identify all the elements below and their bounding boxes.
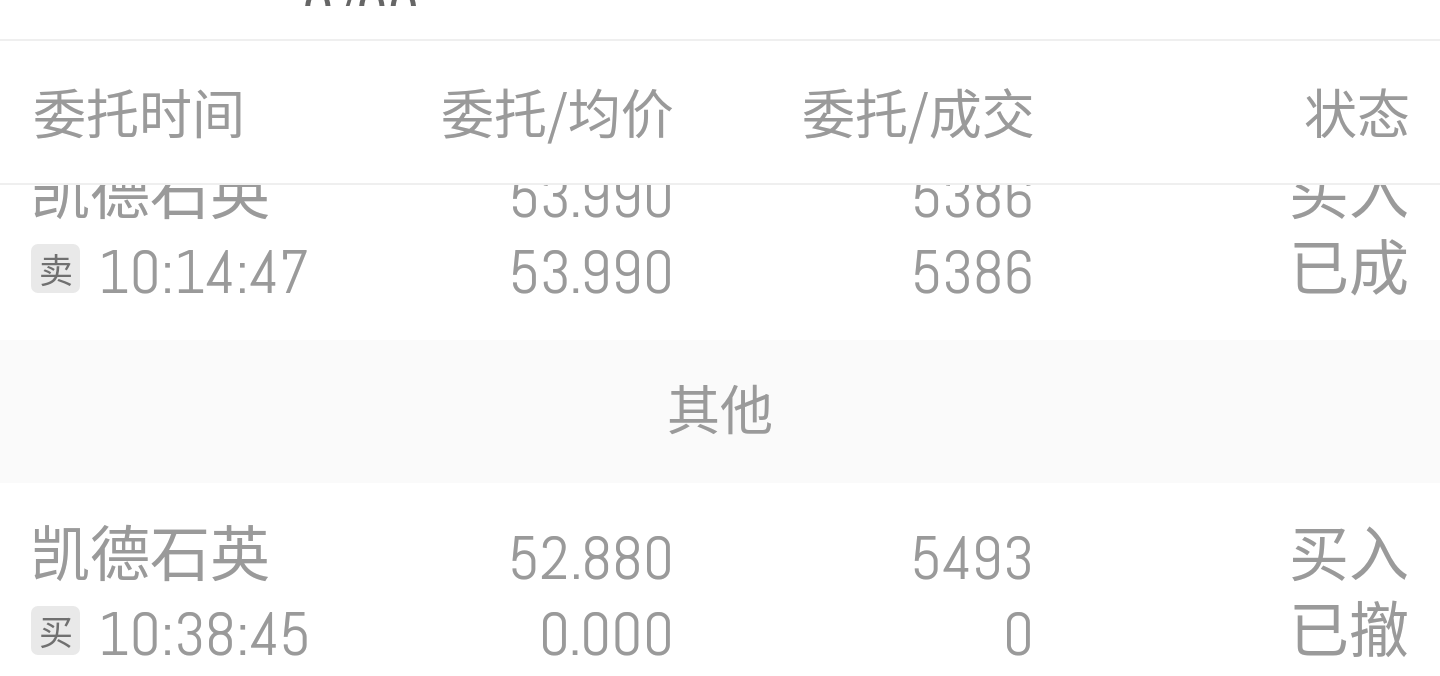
staticText: 买入 [0, 506, 1409, 593]
button[interactable]: 凯德石英 [0, 483, 1440, 676]
staticText: 委托/均价 [441, 73, 674, 150]
staticText: 已撤 [0, 582, 1409, 669]
staticText: 卖 [39, 244, 73, 293]
button[interactable]: 委托时间 [33, 41, 400, 183]
button[interactable]: 委托/均价 [441, 41, 760, 183]
staticText: 委托时间 [33, 73, 245, 150]
staticText: 10:38:45 [98, 595, 311, 673]
staticText: 5386 [0, 185, 1034, 235]
staticText: 10:14:47 [98, 233, 310, 311]
button[interactable]: 凯德石英 [0, 185, 1440, 342]
staticText: 委托/成交 [802, 73, 1035, 150]
staticText: 5386 [0, 233, 1034, 311]
staticText: 买 [39, 606, 73, 655]
staticText: 其他 [0, 369, 1440, 446]
staticText: 53.990 [0, 185, 674, 235]
staticText: 买入 [0, 185, 1409, 231]
staticText: 状态 [1304, 73, 1410, 150]
staticText: 5493 [0, 519, 1034, 597]
staticText: 凯德石英 [30, 185, 270, 231]
staticText: 凯德石英 [30, 506, 270, 593]
button[interactable]: 状态 [1160, 41, 1410, 183]
staticText: 52.880 [0, 519, 674, 597]
staticText: 0 [0, 595, 1034, 673]
staticText: 0.000 [0, 595, 674, 673]
staticText: 0/00 [302, 0, 420, 6]
staticText: 53.990 [0, 233, 674, 311]
staticText: 已成 [0, 220, 1409, 307]
button[interactable]: 委托/成交 [802, 41, 1120, 183]
